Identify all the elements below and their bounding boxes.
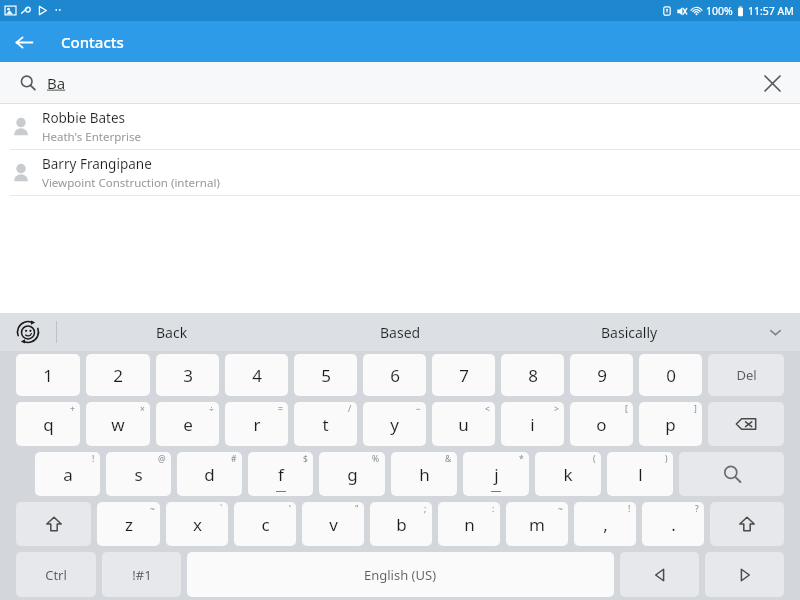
staticText: f — [278, 463, 284, 486]
button[interactable]: k — [535, 452, 601, 496]
staticText: ' — [289, 503, 291, 515]
staticText: Ba — [47, 73, 66, 93]
staticText: ( — [593, 453, 596, 465]
button[interactable]: 2 — [86, 354, 150, 396]
button[interactable]: , — [574, 502, 636, 546]
button[interactable]: English (US) — [187, 552, 614, 597]
button[interactable]: Backspace — [708, 402, 784, 446]
button[interactable]: n — [438, 502, 500, 546]
button[interactable]: d — [177, 452, 242, 496]
staticText: # — [231, 453, 237, 465]
button[interactable]: Robbie Bates — [0, 104, 800, 149]
button[interactable]: 5 — [294, 354, 357, 396]
staticText: Barry Frangipane — [42, 155, 152, 173]
button[interactable]: g — [319, 452, 385, 496]
staticText: Basically — [601, 323, 658, 342]
button[interactable]: i — [501, 402, 564, 446]
staticText: x — [193, 513, 202, 536]
staticText: ? — [695, 503, 699, 515]
button[interactable]: p — [639, 402, 702, 446]
staticText: > — [554, 403, 559, 415]
staticText: y — [390, 413, 399, 436]
staticText: ~ — [150, 503, 155, 515]
staticText: = — [278, 403, 283, 415]
staticText: ÷ — [209, 403, 214, 415]
button[interactable]: 3 — [156, 354, 219, 396]
staticText: . — [671, 513, 676, 536]
button[interactable]: x — [166, 502, 228, 546]
button[interactable]: Ba — [0, 62, 800, 104]
button[interactable]: m — [506, 502, 568, 546]
button[interactable]: Based — [286, 313, 515, 351]
button[interactable]: u — [432, 402, 495, 446]
staticText: p — [665, 413, 676, 436]
staticText: j — [494, 463, 499, 486]
staticText: g — [347, 463, 358, 486]
button[interactable]: t — [294, 402, 357, 446]
staticText: e — [183, 413, 193, 436]
button[interactable]: Back — [57, 313, 286, 351]
staticText: w — [111, 413, 125, 436]
button[interactable]: b — [370, 502, 432, 546]
button[interactable]: w — [86, 402, 150, 446]
button[interactable]: . — [642, 502, 704, 546]
button[interactable]: Move cursor left — [620, 552, 699, 597]
staticText: English (US) — [364, 566, 437, 584]
button[interactable]: 8 — [501, 354, 564, 396]
button[interactable]: r — [225, 402, 288, 446]
button[interactable]: 6 — [363, 354, 426, 396]
button[interactable]: c — [234, 502, 296, 546]
button[interactable]: 0 — [639, 354, 702, 396]
button[interactable]: f — [248, 452, 313, 496]
button[interactable]: s — [106, 452, 171, 496]
button[interactable]: 9 — [570, 354, 633, 396]
button[interactable]: Clear search — [758, 69, 786, 97]
staticText: , — [603, 513, 608, 536]
button[interactable]: Back — [8, 26, 40, 58]
staticText: [ — [625, 403, 628, 415]
staticText: t — [322, 413, 329, 436]
staticText: : — [492, 503, 495, 515]
staticText: !#1 — [132, 566, 152, 584]
button[interactable]: Shift — [16, 502, 91, 546]
button[interactable]: Ctrl — [16, 552, 96, 597]
button[interactable]: Emoji — [0, 313, 56, 351]
button[interactable]: v — [302, 502, 364, 546]
staticText: 5 — [321, 364, 331, 387]
staticText: ! — [628, 503, 631, 515]
button[interactable]: z — [97, 502, 160, 546]
button[interactable]: l — [607, 452, 673, 496]
button[interactable]: Del — [708, 354, 784, 396]
staticText: 9 — [597, 364, 607, 387]
staticText: & — [445, 453, 452, 465]
button[interactable]: Search — [679, 452, 784, 496]
staticText: 2 — [113, 364, 123, 387]
button[interactable]: h — [391, 452, 457, 496]
button[interactable]: !#1 — [102, 552, 181, 597]
button[interactable]: y — [363, 402, 426, 446]
button[interactable]: Basically — [515, 313, 744, 351]
button[interactable]: Expand suggestions — [750, 313, 800, 351]
button[interactable]: e — [156, 402, 219, 446]
button[interactable]: Shift — [710, 502, 784, 546]
button[interactable]: 7 — [432, 354, 495, 396]
button[interactable]: Move cursor right — [705, 552, 784, 597]
button[interactable]: q — [16, 402, 80, 446]
staticText: / — [348, 403, 352, 415]
staticText: 7 — [459, 364, 469, 387]
staticText: $ — [303, 453, 308, 465]
staticText: q — [43, 413, 54, 436]
staticText: % — [372, 453, 380, 465]
button[interactable]: a — [35, 452, 100, 496]
staticText: 1 — [43, 364, 53, 387]
button[interactable]: o — [570, 402, 633, 446]
button[interactable]: j — [463, 452, 529, 496]
staticText: ` — [220, 503, 223, 515]
staticText: m — [529, 513, 545, 536]
staticText: Back — [156, 323, 188, 342]
button[interactable]: 4 — [225, 354, 288, 396]
staticText: z — [125, 513, 133, 536]
button[interactable]: Barry Frangipane — [0, 150, 800, 195]
staticText: k — [563, 463, 573, 486]
button[interactable]: 1 — [16, 354, 80, 396]
